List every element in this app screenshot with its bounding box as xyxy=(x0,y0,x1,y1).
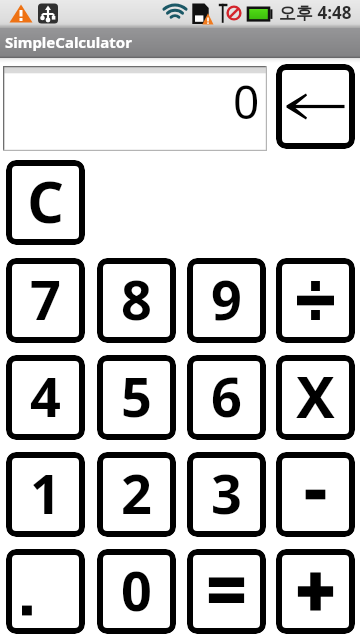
staticText: 6 xyxy=(211,359,242,433)
button[interactable]: 4 xyxy=(6,355,85,440)
staticText: 오후 4:48 xyxy=(279,1,352,24)
staticText: X xyxy=(296,356,335,435)
button[interactable]: Minus xyxy=(276,452,355,537)
button[interactable]: 9 xyxy=(187,258,266,343)
button[interactable]: 3 xyxy=(187,452,266,537)
button[interactable]: 1 xyxy=(6,452,85,537)
button[interactable]: X xyxy=(276,355,355,440)
staticText: 5 xyxy=(121,359,152,433)
staticText: 9 xyxy=(211,262,242,336)
button[interactable]: Plus xyxy=(276,549,355,634)
staticText: 3 xyxy=(211,456,242,530)
button[interactable]: Decimal point xyxy=(6,549,85,634)
button[interactable]: 2 xyxy=(97,452,176,537)
staticText: 8 xyxy=(121,262,152,336)
button[interactable]: 6 xyxy=(187,355,266,440)
staticText: 0 xyxy=(121,553,152,627)
staticText: C xyxy=(27,162,64,240)
button[interactable]: Equals xyxy=(187,549,266,634)
staticText: 0 xyxy=(233,70,260,133)
button[interactable]: Divide xyxy=(276,258,355,343)
button[interactable]: 0 xyxy=(97,549,176,634)
button[interactable]: 5 xyxy=(97,355,176,440)
staticText: SimpleCalculator xyxy=(5,32,132,52)
button[interactable]: Backspace xyxy=(276,64,355,149)
button[interactable]: 8 xyxy=(97,258,176,343)
button[interactable]: 0 xyxy=(3,66,267,151)
staticText: 4 xyxy=(30,359,61,433)
staticText: 1 xyxy=(30,456,61,530)
staticText: 7 xyxy=(30,262,61,336)
staticText: 2 xyxy=(121,456,152,530)
button[interactable]: C xyxy=(6,160,85,245)
button[interactable]: 7 xyxy=(6,258,85,343)
